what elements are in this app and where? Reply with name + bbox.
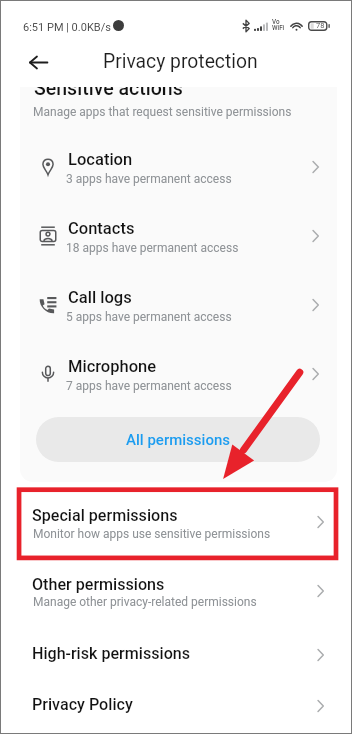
button[interactable]: All permissions <box>36 417 320 462</box>
staticText: Special permissions <box>32 506 178 525</box>
staticText: 6:51 PM | 0.0KB/s <box>23 21 111 34</box>
button[interactable]: Microphone <box>0 340 352 409</box>
staticText: Privacy protection <box>103 50 258 73</box>
button[interactable]: Call logs <box>0 271 352 340</box>
staticText: Call logs <box>68 288 132 307</box>
staticText: WiFi <box>272 24 285 31</box>
button[interactable]: Other permissions <box>0 556 352 625</box>
staticText: Manage apps that request sensitive permi… <box>33 105 292 119</box>
staticText: Other permissions <box>32 575 165 594</box>
staticText: High-risk permissions <box>32 644 191 663</box>
button[interactable]: Privacy Policy <box>0 676 352 728</box>
staticText: 78 <box>316 21 325 30</box>
button[interactable]: Contacts <box>0 202 352 271</box>
staticText: Location <box>68 150 133 169</box>
staticText: Microphone <box>68 357 157 376</box>
staticText: 7 apps have permanent access <box>66 379 232 393</box>
button[interactable]: Back <box>26 50 50 74</box>
button[interactable]: High-risk permissions <box>0 624 352 676</box>
button[interactable]: Location <box>0 133 352 202</box>
staticText: 18 apps have permanent access <box>66 241 239 255</box>
staticText: Contacts <box>68 219 135 238</box>
staticText: Sensitive actions <box>34 87 183 100</box>
staticText: Manage other privacy-related permissions <box>33 595 257 609</box>
staticText: All permissions <box>126 431 231 449</box>
staticText: Monitor how apps use sensitive permissio… <box>33 527 271 541</box>
staticText: 5 apps have permanent access <box>66 310 232 324</box>
staticText: Privacy Policy <box>32 695 133 714</box>
staticText: 3 apps have permanent access <box>66 172 232 186</box>
staticText: Vo <box>272 18 280 25</box>
button[interactable]: Special permissions <box>0 487 352 556</box>
